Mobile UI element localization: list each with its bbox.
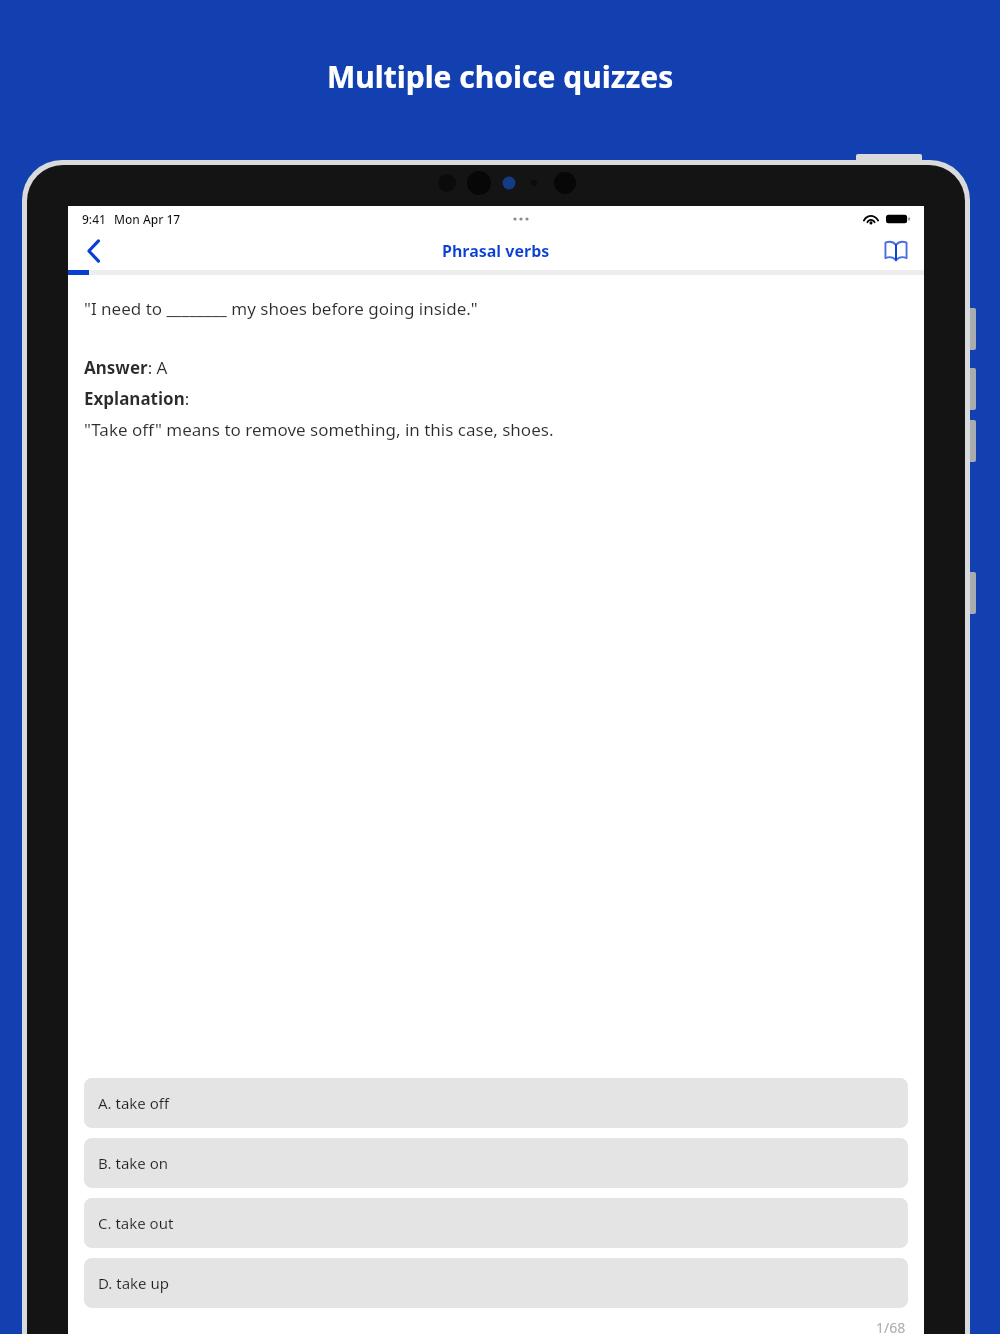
staticText: "I need to ________ my shoes before goin… [84,297,478,320]
staticText: Phrasal verbs [442,240,550,262]
button[interactable]: Back [72,232,116,270]
staticText: A. take off [98,1093,170,1113]
staticText: B. take on [98,1153,169,1173]
button[interactable]: D. take up [84,1258,908,1308]
staticText: Multiple choice quizzes [327,56,674,97]
staticText: D. take up [98,1273,169,1293]
button[interactable]: Dictionary [876,232,916,270]
staticText: 9:41 [82,211,106,227]
button[interactable]: B. take on [84,1138,908,1188]
staticText: Answer: A [84,356,168,379]
staticText: "Take off" means to remove something, in… [84,418,554,441]
staticText: 1/68 [876,1318,906,1334]
staticText: C. take out [98,1213,174,1233]
staticText: Mon Apr 17 [114,211,181,227]
button[interactable]: A. take off [84,1078,908,1128]
staticText: Explanation: [84,387,190,410]
button[interactable]: C. take out [84,1198,908,1248]
